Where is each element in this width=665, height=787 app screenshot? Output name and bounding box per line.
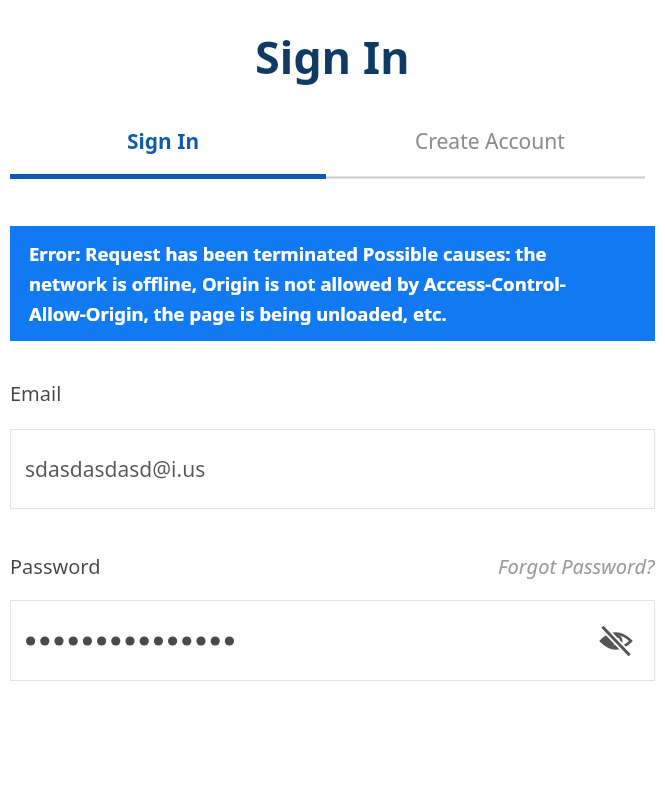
staticText: Create Account [415, 127, 565, 156]
staticText: Allow-Origin, the page is being unloaded… [29, 301, 447, 326]
staticText: Sign In [255, 26, 410, 87]
staticText: Sign In [127, 127, 200, 156]
button[interactable]: Sign In [0, 112, 326, 174]
staticText: Forgot Password? [498, 553, 655, 580]
button[interactable]: Show password [595, 620, 637, 662]
staticText: sdasdasdasd@i.us [25, 455, 206, 484]
staticText: Email [10, 380, 62, 407]
staticText: Error: Request has been terminated Possi… [29, 241, 547, 266]
staticText: network is offline, Origin is not allowe… [29, 271, 566, 296]
button[interactable]: Show password [10, 600, 655, 681]
button[interactable]: sdasdasdasd@i.us [10, 429, 655, 509]
button[interactable]: Forgot Password? [498, 553, 655, 580]
staticText: Password [10, 553, 101, 580]
button[interactable]: Create Account [326, 112, 665, 174]
